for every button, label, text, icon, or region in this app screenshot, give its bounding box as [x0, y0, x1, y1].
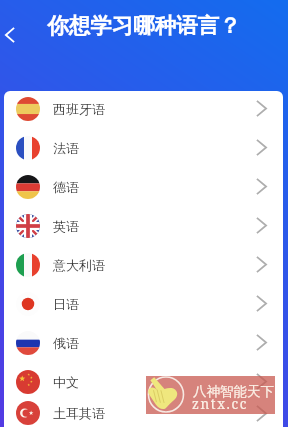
staticText: 八神智能天下 — [193, 383, 274, 400]
button[interactable]: 土耳其语 — [4, 401, 283, 425]
button[interactable]: 意大利语 — [4, 245, 283, 284]
button[interactable]: 英语 — [4, 206, 283, 245]
staticText: 意大利语 — [53, 257, 105, 273]
staticText: 你想学习哪种语言？ — [47, 12, 241, 39]
staticText: 德语 — [53, 179, 79, 195]
staticText: 土耳其语 — [53, 405, 105, 421]
button[interactable]: 俄语 — [4, 323, 283, 362]
button[interactable]: Back — [0, 20, 25, 50]
staticText: zntx.cc — [192, 395, 249, 413]
staticText: 日语 — [53, 296, 79, 312]
staticText: 英语 — [53, 218, 79, 234]
button[interactable]: 德语 — [4, 167, 283, 206]
staticText: 俄语 — [53, 335, 79, 351]
staticText: 中文 — [53, 374, 79, 390]
button[interactable]: 西班牙语 — [4, 91, 283, 128]
button[interactable]: 日语 — [4, 284, 283, 323]
staticText: 法语 — [53, 140, 79, 156]
button[interactable]: 中文 — [4, 362, 283, 401]
staticText: 西班牙语 — [53, 101, 105, 117]
button[interactable]: 法语 — [4, 128, 283, 167]
